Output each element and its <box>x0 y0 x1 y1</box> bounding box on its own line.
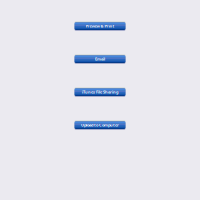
staticText: Preview & Print <box>85 23 114 29</box>
button[interactable]: Preview & Print <box>74 22 125 30</box>
button[interactable]: Email <box>74 55 125 63</box>
staticText: Email <box>95 56 105 62</box>
button[interactable]: iTunes File Sharing <box>74 88 125 96</box>
staticText: iTunes File Sharing <box>82 89 118 95</box>
staticText: Upload to Computer <box>81 122 119 128</box>
button[interactable]: Upload to Computer <box>74 121 125 129</box>
